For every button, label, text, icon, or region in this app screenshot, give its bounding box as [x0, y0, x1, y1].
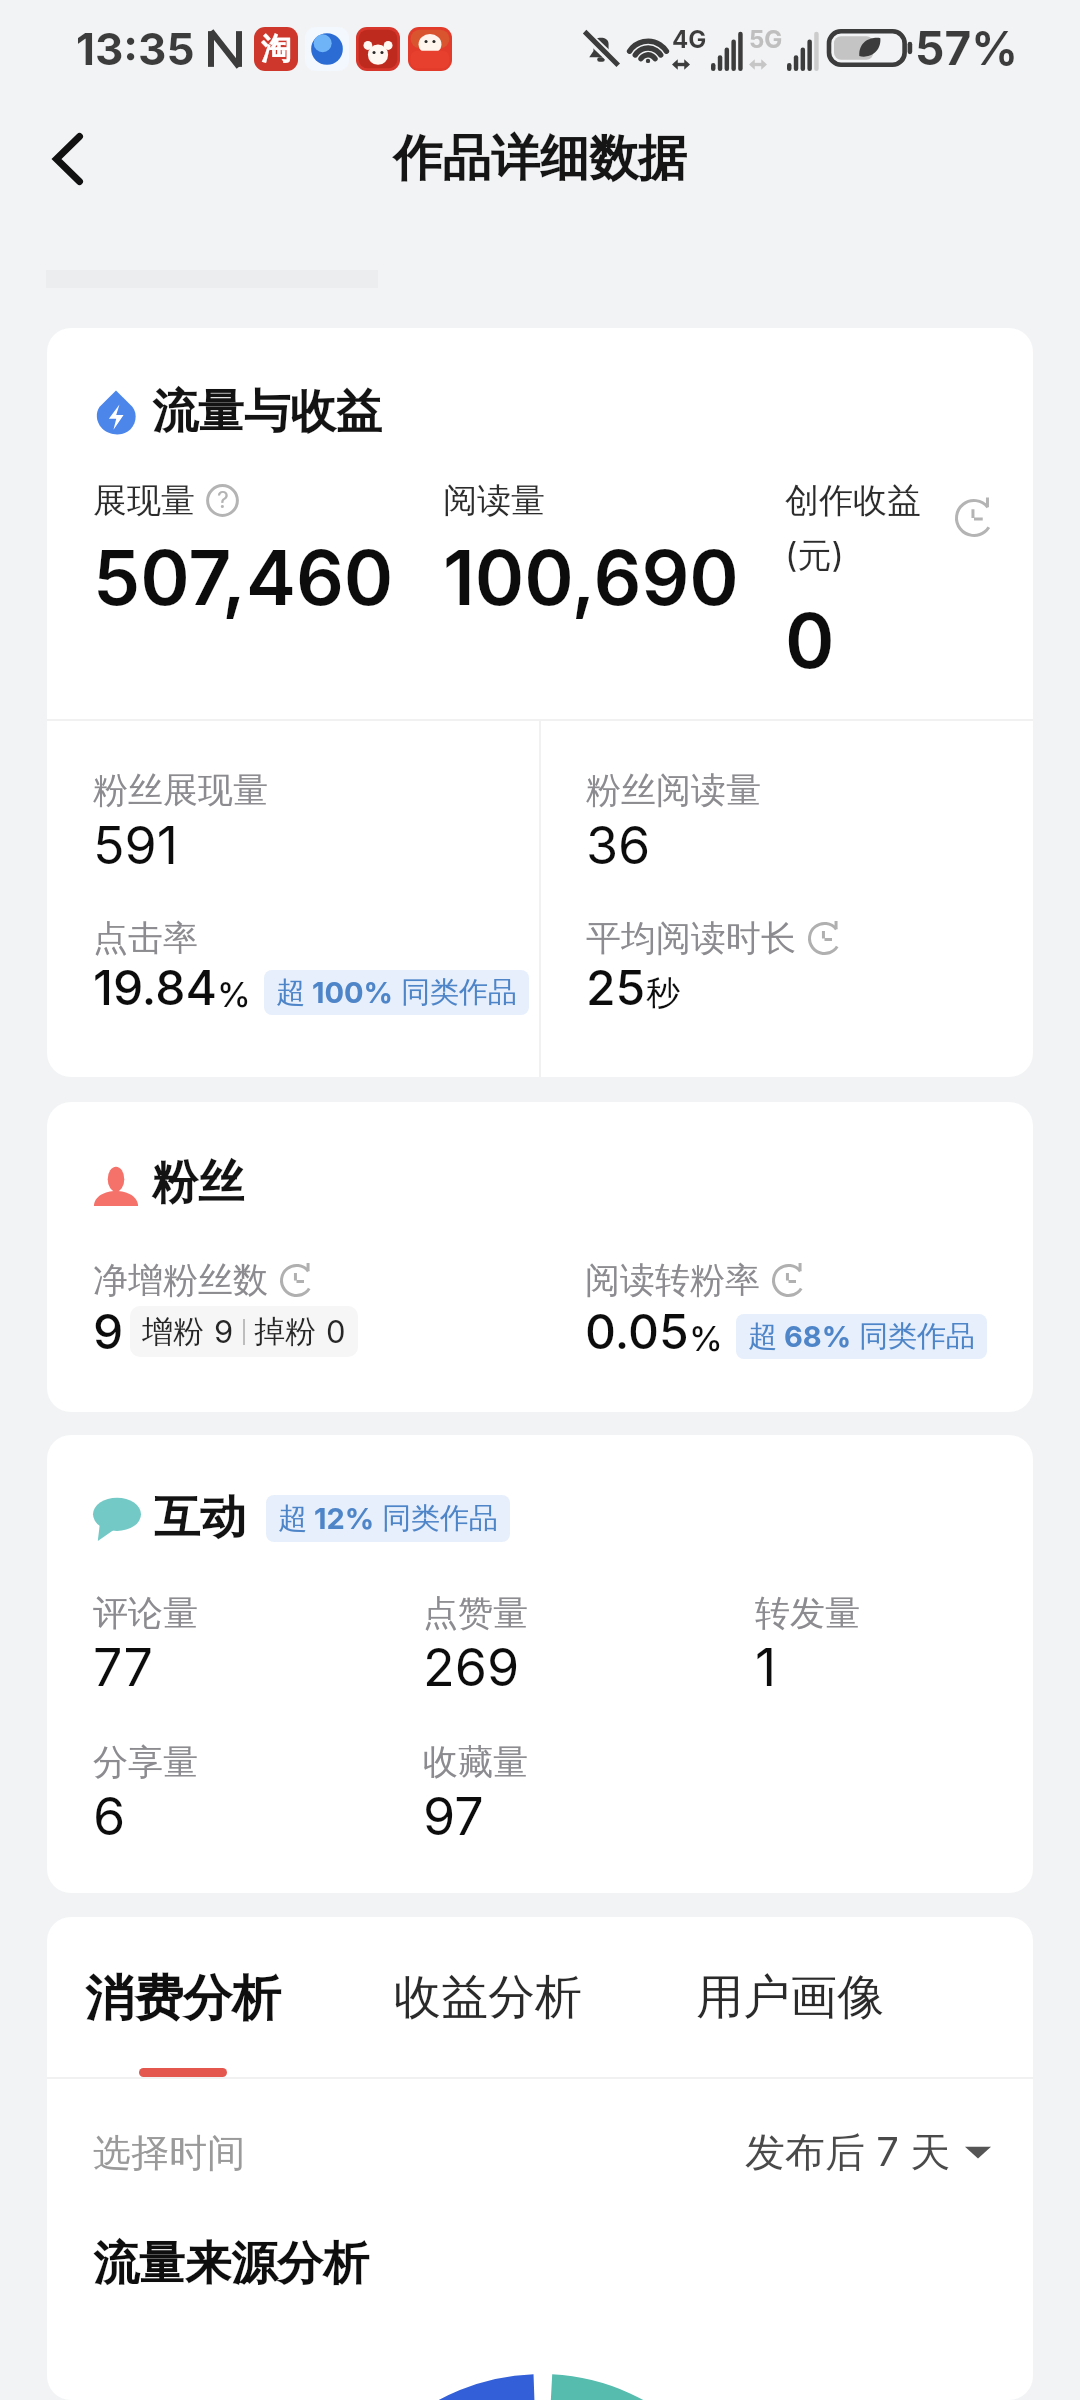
- staticText: 粉丝: [152, 1154, 244, 1212]
- staticText: 消费分析: [85, 1968, 281, 2030]
- button[interactable]: Back: [23, 114, 113, 204]
- button[interactable]: 用户画像: [696, 1968, 884, 2027]
- staticText: 阅读转粉率: [585, 1258, 760, 1302]
- staticText: 分享量: [93, 1740, 198, 1784]
- staticText: 转发量: [755, 1591, 860, 1635]
- staticText: 流量来源分析: [93, 2235, 369, 2293]
- staticText: 超: [276, 974, 305, 1011]
- button[interactable]: 发布后 7 天: [745, 2127, 991, 2178]
- staticText: 阅读量: [443, 479, 545, 522]
- staticText: 100%: [312, 975, 394, 1010]
- staticText: 5G: [749, 25, 783, 54]
- staticText: 19.84: [93, 958, 217, 1016]
- staticText: 作品详细数据: [393, 128, 687, 190]
- staticText: 100,690: [443, 532, 739, 623]
- staticText: %: [217, 974, 251, 1015]
- staticText: 创作收益: [785, 479, 921, 522]
- staticText: 增粉: [142, 1312, 204, 1351]
- staticText: 同类作品: [859, 1318, 975, 1355]
- staticText: 收益分析: [394, 1968, 582, 2027]
- staticText: (元): [785, 534, 844, 577]
- staticText: 平均阅读时长: [586, 916, 796, 960]
- staticText: 用户画像: [696, 1968, 884, 2027]
- staticText: 591: [93, 814, 179, 877]
- staticText: 互动: [154, 1489, 246, 1547]
- button[interactable]: 消费分析: [85, 1968, 281, 2077]
- staticText: 粉丝阅读量: [586, 768, 761, 812]
- staticText: 0: [785, 595, 835, 686]
- staticText: 流量与收益: [152, 383, 382, 441]
- staticText: 77: [93, 1636, 153, 1699]
- staticText: 点赞量: [423, 1591, 528, 1635]
- staticText: 12%: [314, 1501, 375, 1536]
- staticText: 点击率: [93, 916, 198, 960]
- button[interactable]: 收益分析: [394, 1968, 582, 2027]
- staticText: 0.05: [585, 1302, 689, 1360]
- staticText: 13:35: [76, 22, 195, 75]
- staticText: 9: [214, 1313, 234, 1351]
- staticText: 9: [93, 1302, 124, 1360]
- staticText: 97: [423, 1785, 484, 1848]
- staticText: 4G: [672, 25, 707, 54]
- staticText: 粉丝展现量: [93, 768, 268, 812]
- staticText: 0: [326, 1313, 346, 1351]
- staticText: %: [689, 1318, 723, 1359]
- staticText: 68%: [784, 1319, 852, 1354]
- staticText: 掉粉: [254, 1312, 316, 1351]
- staticText: 选择时间: [93, 2129, 245, 2177]
- staticText: 评论量: [93, 1591, 198, 1635]
- staticText: 同类作品: [401, 974, 517, 1011]
- staticText: 超: [278, 1500, 307, 1537]
- staticText: 269: [423, 1636, 520, 1699]
- staticText: 秒: [646, 972, 680, 1015]
- staticText: 淘: [261, 30, 291, 68]
- staticText: 同类作品: [382, 1500, 498, 1537]
- staticText: 6: [93, 1785, 126, 1848]
- staticText: ?: [217, 486, 229, 514]
- staticText: 收藏量: [423, 1740, 528, 1784]
- staticText: 净增粉丝数: [93, 1258, 268, 1302]
- staticText: 507,460: [93, 532, 394, 623]
- staticText: 展现量: [93, 479, 195, 522]
- staticText: 57%: [915, 20, 1018, 76]
- staticText: 1: [755, 1636, 777, 1699]
- staticText: 25: [586, 958, 646, 1016]
- staticText: 36: [586, 814, 651, 877]
- staticText: 发布后 7 天: [745, 2127, 951, 2178]
- staticText: 超: [748, 1318, 777, 1355]
